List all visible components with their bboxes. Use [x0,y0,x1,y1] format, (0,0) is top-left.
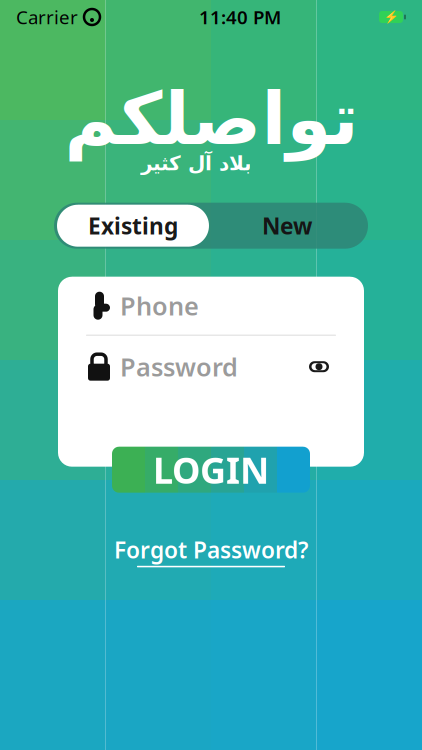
button[interactable]: Forgot Password? [104,531,318,571]
staticText: LOGIN [153,446,269,494]
staticText: Phone [120,289,199,322]
staticText: 11:40 PM [199,5,281,29]
button[interactable]: LOGIN [112,447,310,493]
staticText: Forgot Password? [114,535,308,565]
button[interactable]: Phone [58,277,364,335]
staticText: بلاد آل كثير [140,152,251,175]
staticText: New [262,211,312,241]
staticText: Password [120,350,238,383]
button[interactable]: New [209,205,365,247]
button[interactable]: Show password [302,350,336,384]
staticText: تواصلكم [64,78,358,160]
staticText: Carrier [16,5,78,29]
staticText: ⚡ [383,10,398,24]
button[interactable]: Existing [57,205,209,247]
staticText: Existing [88,211,178,241]
